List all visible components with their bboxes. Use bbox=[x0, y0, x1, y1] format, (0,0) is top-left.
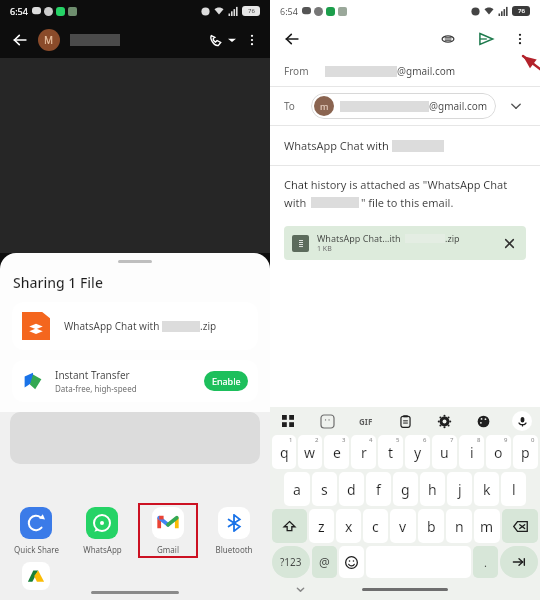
button[interactable]: l bbox=[501, 472, 526, 506]
button[interactable]: d bbox=[339, 472, 364, 506]
staticText: w bbox=[304, 443, 316, 462]
button[interactable]: j bbox=[447, 472, 472, 506]
button[interactable]: Apps bbox=[278, 411, 298, 431]
staticText: .zip bbox=[200, 319, 217, 333]
button[interactable]: w bbox=[298, 435, 322, 469]
button[interactable]: t bbox=[378, 435, 403, 469]
button[interactable]: q bbox=[272, 435, 296, 469]
button[interactable]: k bbox=[474, 472, 499, 506]
button[interactable]: . bbox=[473, 546, 498, 578]
button[interactable]: More options bbox=[510, 29, 530, 49]
staticText: @ bbox=[319, 554, 330, 570]
button[interactable]: Remove attachment bbox=[500, 234, 518, 252]
staticText: m bbox=[320, 100, 329, 112]
staticText: h bbox=[428, 480, 437, 499]
button[interactable]: g bbox=[393, 472, 418, 506]
staticText: y bbox=[414, 443, 422, 462]
button[interactable]: x bbox=[336, 509, 361, 543]
staticText: 9 bbox=[504, 436, 508, 444]
button[interactable]: Back bbox=[280, 27, 304, 51]
button[interactable]: r bbox=[351, 435, 376, 469]
button[interactable]: u bbox=[432, 435, 457, 469]
staticText: M bbox=[44, 33, 54, 47]
button[interactable]: Theme bbox=[473, 411, 493, 431]
button[interactable]: Call bbox=[204, 29, 226, 51]
button[interactable]: i bbox=[459, 435, 484, 469]
button[interactable]: n bbox=[446, 509, 472, 543]
staticText: q bbox=[280, 443, 289, 462]
button[interactable]: Settings bbox=[434, 411, 454, 431]
staticText: b bbox=[427, 517, 436, 536]
button[interactable]: Gmail bbox=[138, 503, 198, 558]
staticText: 6:54 bbox=[280, 5, 298, 17]
button[interactable]: Voice input bbox=[512, 411, 532, 431]
staticText: " file to this email. bbox=[361, 195, 454, 210]
button[interactable]: p bbox=[513, 435, 538, 469]
staticText: n bbox=[455, 517, 464, 536]
staticText: 76 bbox=[518, 7, 525, 15]
button[interactable]: v bbox=[390, 509, 416, 543]
button[interactable]: More options bbox=[242, 30, 262, 50]
button[interactable]: m bbox=[474, 509, 500, 543]
staticText: Quick Share bbox=[14, 544, 59, 555]
staticText: @gmail.com bbox=[429, 99, 488, 113]
button[interactable]: o bbox=[486, 435, 511, 469]
button[interactable]: GIF bbox=[356, 411, 376, 431]
button[interactable]: Instant Transfer bbox=[12, 360, 258, 402]
staticText: 1 KB bbox=[317, 244, 332, 254]
button[interactable]: s bbox=[312, 472, 337, 506]
button[interactable]: f bbox=[366, 472, 391, 506]
button[interactable]: Stickers bbox=[317, 411, 337, 431]
button[interactable]: Hide keyboard bbox=[294, 583, 306, 595]
button[interactable]: Bluetooth bbox=[204, 503, 264, 558]
staticText: c bbox=[372, 517, 379, 536]
button[interactable]: ?123 bbox=[272, 546, 310, 578]
button[interactable]: m bbox=[311, 93, 496, 119]
button[interactable]: Enable bbox=[204, 371, 248, 391]
staticText: Data-free, high-speed bbox=[55, 383, 137, 394]
button[interactable]: WhatsApp Chat...ith bbox=[284, 226, 526, 260]
staticText: 76 bbox=[248, 7, 255, 15]
staticText: Enable bbox=[212, 375, 241, 387]
button[interactable]: h bbox=[420, 472, 445, 506]
staticText: 1 bbox=[289, 436, 293, 444]
staticText: WhatsApp Chat with bbox=[64, 319, 160, 333]
button[interactable]: WhatsApp bbox=[72, 503, 132, 558]
staticText: 8 bbox=[477, 436, 481, 444]
staticText: s bbox=[321, 480, 328, 499]
button[interactable]: y bbox=[405, 435, 430, 469]
staticText: 0 bbox=[531, 436, 535, 444]
button[interactable]: b bbox=[418, 509, 444, 543]
staticText: Bluetooth bbox=[215, 544, 253, 555]
button[interactable]: z bbox=[309, 509, 334, 543]
button[interactable]: Shift bbox=[272, 509, 307, 543]
staticText: 6 bbox=[423, 436, 427, 444]
button[interactable]: WhatsApp Chat with bbox=[12, 302, 258, 350]
staticText: v bbox=[399, 517, 407, 536]
button[interactable]: Clipboard bbox=[395, 411, 415, 431]
button[interactable]: Send bbox=[474, 27, 498, 51]
staticText: l bbox=[512, 480, 516, 499]
staticText: e bbox=[333, 443, 341, 462]
staticText: p bbox=[521, 443, 530, 462]
button[interactable]: a bbox=[284, 472, 310, 506]
button[interactable]: Back bbox=[8, 28, 32, 52]
staticText: Gmail bbox=[157, 544, 179, 555]
button[interactable]: Next field bbox=[500, 546, 538, 578]
button[interactable]: Expand recipients bbox=[506, 96, 526, 116]
staticText: Sharing 1 File bbox=[13, 273, 103, 292]
staticText: 4 bbox=[369, 436, 373, 444]
staticText: j bbox=[458, 480, 462, 499]
button[interactable]: e bbox=[324, 435, 349, 469]
button[interactable]: Emoji bbox=[339, 546, 364, 578]
staticText: 2 bbox=[315, 436, 319, 444]
button[interactable]: Attach file bbox=[436, 27, 460, 51]
button[interactable]: Backspace bbox=[502, 509, 538, 543]
staticText: u bbox=[440, 443, 449, 462]
button[interactable]: Quick Share bbox=[6, 503, 66, 558]
staticText: To bbox=[284, 99, 295, 113]
staticText: 7 bbox=[450, 436, 454, 444]
button[interactable]: c bbox=[363, 509, 388, 543]
button[interactable]: @ bbox=[312, 546, 337, 578]
